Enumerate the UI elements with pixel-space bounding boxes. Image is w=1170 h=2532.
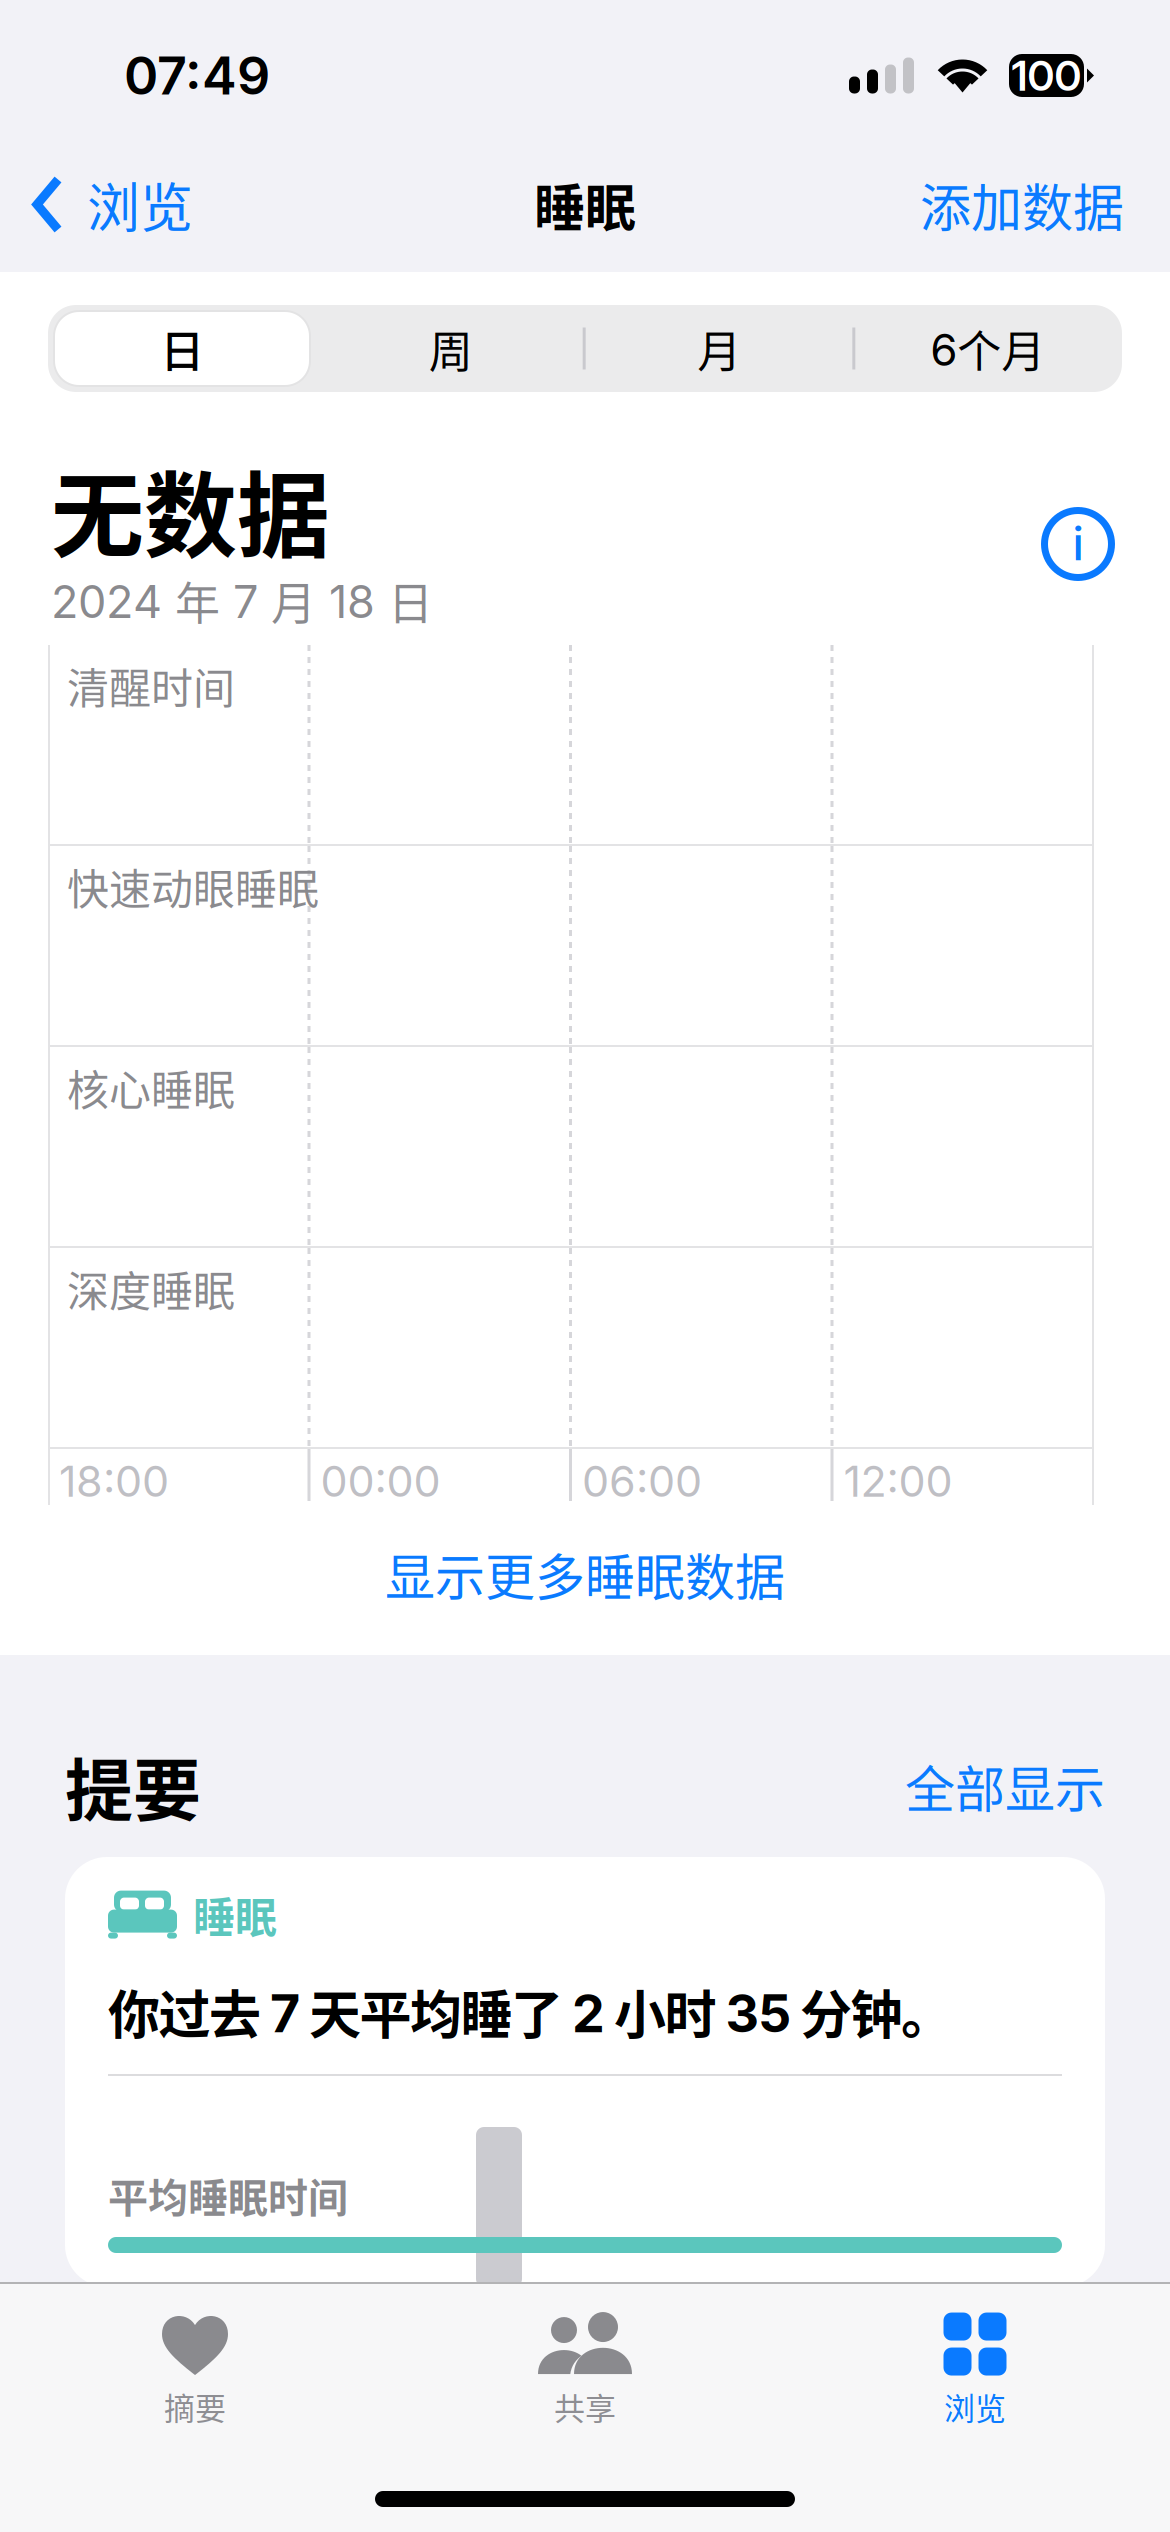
- button[interactable]: 显示更多睡眠数据: [0, 1505, 1170, 1643]
- staticText: 全部显示: [905, 1750, 1105, 1822]
- button[interactable]: 6个月: [853, 305, 1122, 392]
- staticText: 00:00: [320, 1455, 440, 1507]
- staticText: 平均睡眠时间: [108, 2166, 348, 2224]
- button[interactable]: 周: [316, 305, 585, 392]
- staticText: 日: [160, 317, 204, 380]
- staticText: 100: [1011, 50, 1081, 101]
- button[interactable]: 浏览: [0, 137, 217, 272]
- staticText: 18:00: [59, 1455, 169, 1507]
- staticText: 浏览: [944, 2384, 1006, 2429]
- button[interactable]: 全部显示: [905, 1750, 1105, 1822]
- staticText: 共享: [554, 2384, 616, 2429]
- staticText: 月: [697, 317, 741, 380]
- staticText: 显示更多睡眠数据: [385, 1538, 785, 1610]
- staticText: 睡眠: [534, 168, 636, 241]
- staticText: 摘要: [164, 2384, 226, 2429]
- staticText: 添加数据: [920, 168, 1124, 241]
- staticText: 你过去 7 天平均睡了 2 小时 35 分钟。: [108, 1974, 953, 2049]
- staticText: 核心睡眠: [67, 1057, 235, 1118]
- button[interactable]: 共享: [390, 2308, 780, 2433]
- staticText: 06:00: [582, 1455, 702, 1507]
- staticText: 周: [429, 317, 473, 380]
- staticText: 浏览: [87, 166, 193, 243]
- staticText: 深度睡眠: [67, 1258, 235, 1319]
- staticText: 6个月: [930, 317, 1045, 380]
- staticText: 快速动眼睡眠: [67, 856, 319, 917]
- button[interactable]: 摘要: [0, 2308, 390, 2433]
- staticText: 提要: [65, 1737, 201, 1835]
- button[interactable]: 关于睡眠: [1041, 507, 1115, 581]
- staticText: 2024 年 7 月 18 日: [51, 568, 433, 633]
- button[interactable]: 月: [585, 305, 853, 392]
- staticText: 07:49: [124, 44, 270, 107]
- staticText: 清醒时间: [67, 655, 235, 716]
- button[interactable]: 添加数据: [896, 137, 1170, 272]
- staticText: 无数据: [51, 442, 330, 577]
- staticText: 睡眠: [193, 1884, 277, 1945]
- button[interactable]: 浏览: [780, 2308, 1170, 2433]
- staticText: 12:00: [843, 1455, 952, 1507]
- staticText: i: [1072, 517, 1083, 571]
- button[interactable]: 日: [48, 305, 316, 392]
